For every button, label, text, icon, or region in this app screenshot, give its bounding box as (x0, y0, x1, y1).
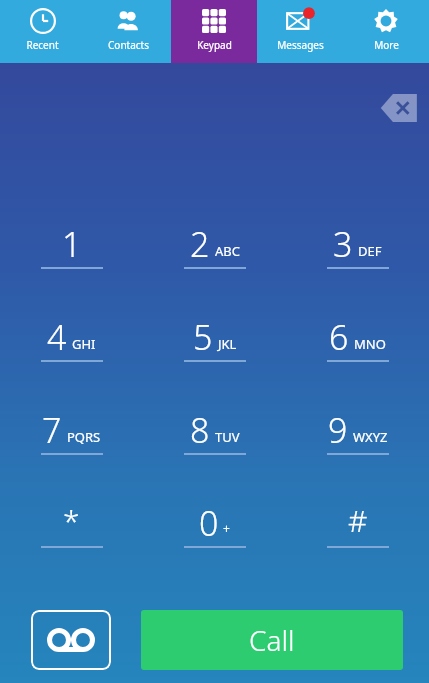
staticText: Recent (26, 38, 59, 52)
staticText: PQRS (67, 428, 101, 446)
staticText: * (63, 500, 80, 541)
staticText: 0 (199, 500, 219, 546)
staticText: TUV (215, 428, 240, 446)
staticText: MNO (354, 335, 386, 353)
button[interactable]: 5 (143, 306, 286, 399)
staticText: Keypad (197, 38, 232, 52)
staticText: # (348, 500, 368, 541)
staticText: 1 (62, 221, 82, 267)
staticText: 2 (190, 221, 210, 267)
staticText: Call (249, 621, 295, 659)
staticText: WXYZ (353, 428, 388, 446)
button[interactable]: Recent (0, 0, 85, 63)
button[interactable]: Messages (257, 0, 343, 63)
button[interactable]: 2 (143, 213, 286, 306)
staticText: More (374, 38, 399, 52)
staticText: ABC (215, 242, 240, 260)
staticText: Messages (277, 38, 324, 52)
staticText: 3 (333, 221, 353, 267)
button[interactable]: More (343, 0, 429, 63)
button[interactable]: 0 (143, 492, 286, 585)
button[interactable]: Contacts (85, 0, 171, 63)
staticText: + (223, 520, 230, 536)
staticText: GHI (72, 335, 96, 353)
button[interactable]: 7 (0, 399, 143, 492)
button[interactable]: 8 (143, 399, 286, 492)
staticText: 4 (47, 314, 67, 360)
button[interactable]: Backspace (377, 89, 421, 127)
staticText: 7 (42, 407, 62, 453)
button[interactable]: 9 (286, 399, 429, 492)
button[interactable]: 1 (0, 213, 143, 306)
staticText: JKL (218, 335, 237, 353)
button[interactable]: * (0, 492, 143, 585)
button[interactable]: Voicemail (31, 610, 111, 670)
button[interactable]: 4 (0, 306, 143, 399)
button[interactable]: # (286, 492, 429, 585)
button[interactable]: 6 (286, 306, 429, 399)
staticText: Contacts (108, 38, 149, 52)
button[interactable]: Call (141, 610, 403, 670)
staticText: 9 (328, 407, 348, 453)
staticText: 8 (190, 407, 210, 453)
staticText: 6 (329, 314, 349, 360)
staticText: DEF (358, 242, 382, 260)
button[interactable]: 3 (286, 213, 429, 306)
button[interactable]: Keypad (171, 0, 257, 63)
staticText: 5 (193, 314, 213, 360)
